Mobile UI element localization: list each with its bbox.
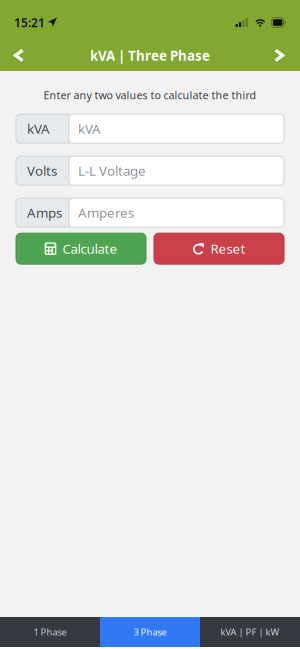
staticText: Reset xyxy=(210,240,245,257)
staticText: L-L Voltage xyxy=(78,162,146,179)
button[interactable]: 1 Phase xyxy=(0,617,100,647)
staticText: Calculate xyxy=(62,240,117,257)
staticText: kVA xyxy=(78,120,101,137)
staticText: 15:21 xyxy=(14,14,45,30)
button[interactable]: Reset xyxy=(154,233,284,264)
staticText: kVA | PF | kW xyxy=(220,626,279,638)
staticText: Volts xyxy=(27,162,57,179)
button[interactable]: kVA | PF | kW xyxy=(200,617,300,647)
staticText: kVA | Three Phase xyxy=(90,47,210,64)
button[interactable]: Next xyxy=(266,40,296,71)
button[interactable]: Calculate xyxy=(16,233,146,264)
staticText: Enter any two values to calculate the th… xyxy=(43,88,256,102)
staticText: 1 Phase xyxy=(33,626,66,638)
staticText: Amperes xyxy=(78,204,134,221)
button[interactable]: 3 Phase xyxy=(100,617,200,647)
staticText: Amps xyxy=(27,204,62,221)
staticText: 3 Phase xyxy=(133,626,166,638)
staticText: kVA xyxy=(27,120,50,137)
button[interactable]: Previous xyxy=(4,40,34,71)
